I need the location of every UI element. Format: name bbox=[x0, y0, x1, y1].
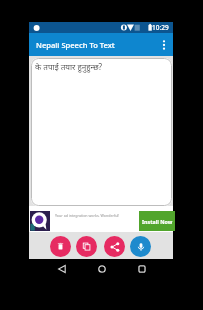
button[interactable]: Home bbox=[96, 263, 108, 275]
button[interactable]: Microphone bbox=[130, 236, 151, 257]
staticText: Your ad integration works. Wonderful! bbox=[55, 213, 120, 218]
button[interactable]: Install Now bbox=[139, 211, 175, 231]
button[interactable]: के तपाईं तयार हुनुहुन्छ? bbox=[31, 58, 172, 206]
button[interactable]: Nepali Speech To Text bbox=[29, 33, 173, 56]
staticText: के तपाईं तयार हुनुहुन्छ? bbox=[35, 61, 103, 72]
button[interactable]: Delete bbox=[50, 236, 71, 257]
staticText: 10:29 bbox=[152, 23, 169, 32]
button[interactable]: Recent apps bbox=[136, 263, 148, 275]
button[interactable]: More options bbox=[154, 33, 173, 56]
button[interactable]: Copy bbox=[76, 236, 97, 257]
staticText: Install Now bbox=[142, 218, 173, 225]
button[interactable]: Back bbox=[56, 263, 68, 275]
button[interactable]: Your ad integration works. Wonderful! bbox=[29, 206, 173, 232]
button[interactable]: Share bbox=[104, 236, 125, 257]
staticText: Nepali Speech To Text bbox=[36, 40, 115, 50]
